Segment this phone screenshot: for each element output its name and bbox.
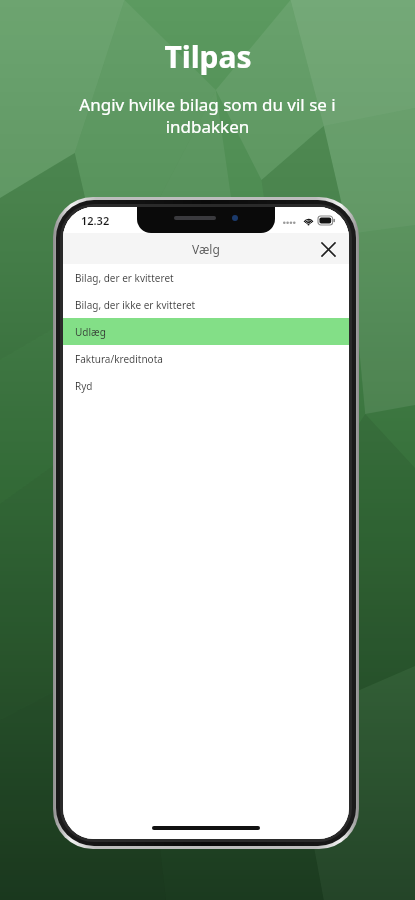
button[interactable]: Ryd xyxy=(63,372,349,399)
button[interactable]: Udlæg xyxy=(63,318,349,345)
button[interactable]: Luk xyxy=(315,236,341,262)
staticText: Ryd xyxy=(75,379,93,393)
staticText: Udlæg xyxy=(75,325,106,339)
staticText: 12.32 xyxy=(81,213,110,228)
button[interactable]: Bilag, der er kvitteret xyxy=(63,264,349,291)
staticText: Angiv hvilke bilag som du vil se i indba… xyxy=(79,93,336,138)
button[interactable]: Faktura/kreditnota xyxy=(63,345,349,372)
button[interactable]: Bilag, der ikke er kvitteret xyxy=(63,291,349,318)
staticText: Bilag, der er kvitteret xyxy=(75,271,174,285)
button[interactable]: Vælg xyxy=(63,233,349,264)
staticText: Bilag, der ikke er kvitteret xyxy=(75,298,196,312)
staticText: Tilpas xyxy=(164,36,252,77)
staticText: Vælg xyxy=(192,241,220,257)
staticText: Faktura/kreditnota xyxy=(75,352,163,366)
